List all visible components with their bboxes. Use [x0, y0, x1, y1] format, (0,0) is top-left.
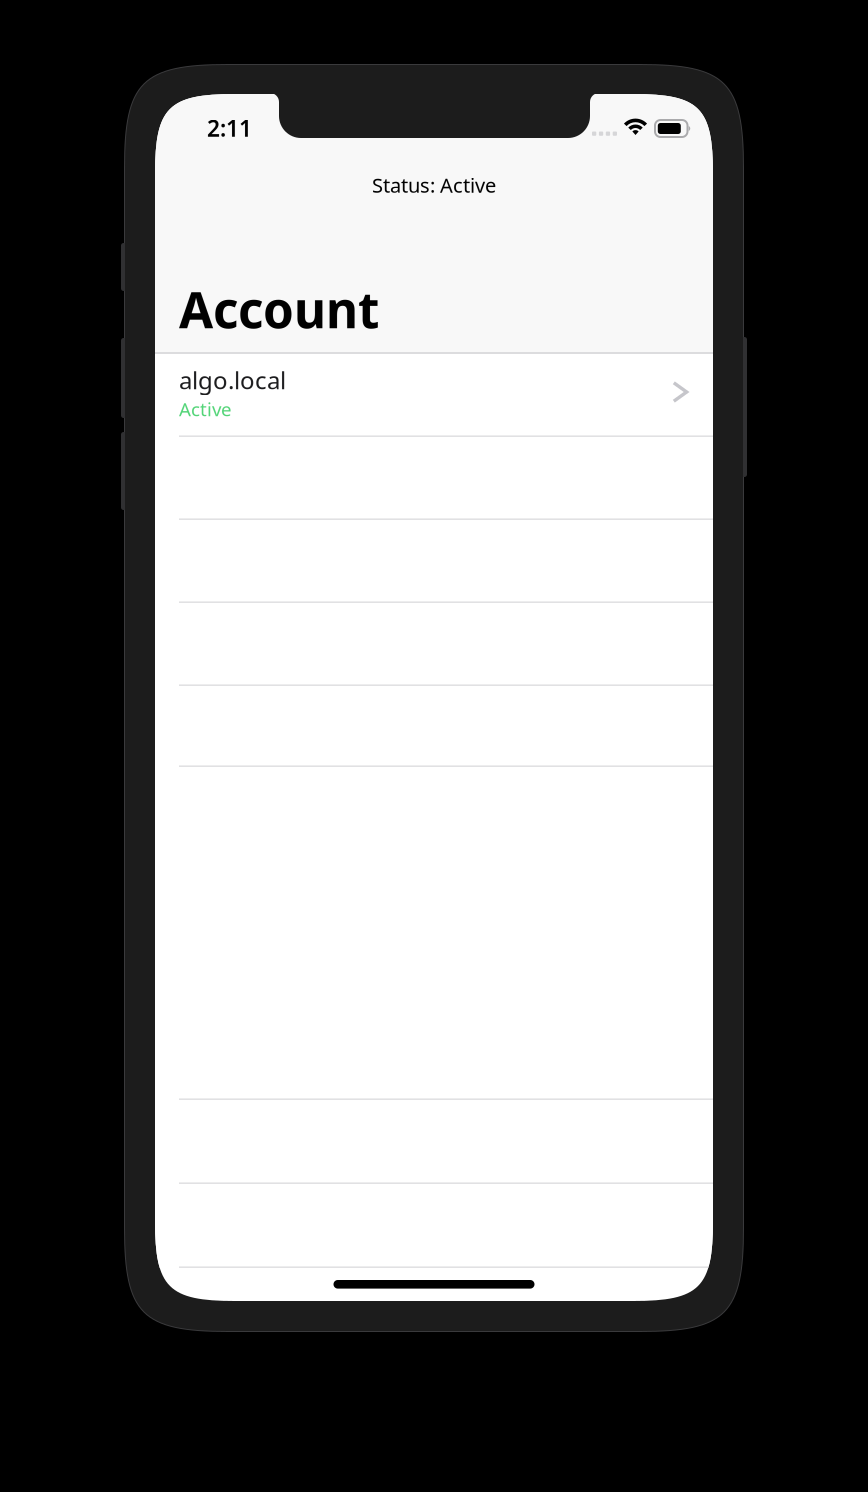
staticText: Active: [179, 397, 232, 421]
staticText: algo.local: [179, 364, 286, 396]
staticText: 2:11: [207, 113, 252, 143]
staticText: Status: Active: [372, 172, 496, 198]
button[interactable]: algo.local, Active: [155, 354, 713, 437]
staticText: Account: [179, 276, 379, 342]
